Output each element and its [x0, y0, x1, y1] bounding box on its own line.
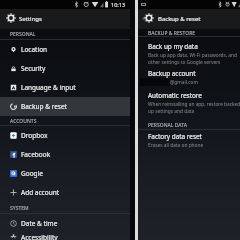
button[interactable]: Accessibility	[0, 233, 130, 240]
button[interactable]: Back up my data	[148, 42, 198, 51]
button[interactable]: Backup & reset	[0, 97, 130, 116]
staticText: SYSTEM	[10, 205, 29, 212]
button[interactable]: Location	[0, 40, 130, 59]
staticText: Location	[21, 45, 48, 54]
button[interactable]: Language & input	[0, 78, 130, 97]
staticText: Language & input	[21, 83, 76, 92]
button[interactable]: Settings	[0, 9, 130, 29]
button[interactable]: Add account	[0, 183, 130, 202]
staticText: BACKUP & RESTORE	[148, 30, 196, 37]
staticText: other settings to Google servers	[148, 59, 221, 66]
staticText: Security	[21, 64, 46, 73]
staticText: Facebook	[21, 150, 51, 159]
staticText: Date & time	[21, 219, 58, 228]
staticText: up settings and data	[148, 108, 195, 115]
button[interactable]: Backup account	[148, 69, 196, 78]
staticText: @gmail.com	[170, 79, 198, 86]
staticText: Google	[21, 169, 43, 178]
staticText: Backup & reset	[158, 15, 201, 23]
button[interactable]: Facebook	[0, 145, 130, 164]
button[interactable]: Factory data reset	[148, 132, 202, 141]
staticText: PERSONAL DATA	[148, 122, 188, 129]
staticText: When reinstalling an app, restore backed	[148, 101, 240, 108]
button[interactable]: Google	[0, 164, 130, 183]
staticText: 10:13	[111, 1, 126, 8]
staticText: Backup & reset	[21, 102, 67, 111]
button[interactable]: Navigate up	[138, 9, 240, 29]
staticText: PERSONAL	[10, 31, 36, 38]
staticText: Add account	[21, 188, 60, 197]
button[interactable]: Dropbox	[0, 126, 130, 145]
staticText: Settings	[19, 15, 42, 23]
other: Navigate up	[141, 16, 146, 21]
button[interactable]: Automatic restore	[148, 91, 202, 100]
staticText: Accessibility	[21, 233, 58, 240]
staticText: ACCOUNTS	[10, 118, 37, 125]
staticText: Dropbox	[21, 131, 48, 140]
button[interactable]: Date & time	[0, 214, 130, 233]
staticText: Back up app data, Wi-Fi passwords, and	[148, 52, 237, 59]
staticText: Erases all data on phone	[148, 142, 204, 149]
button[interactable]: Security	[0, 59, 130, 78]
